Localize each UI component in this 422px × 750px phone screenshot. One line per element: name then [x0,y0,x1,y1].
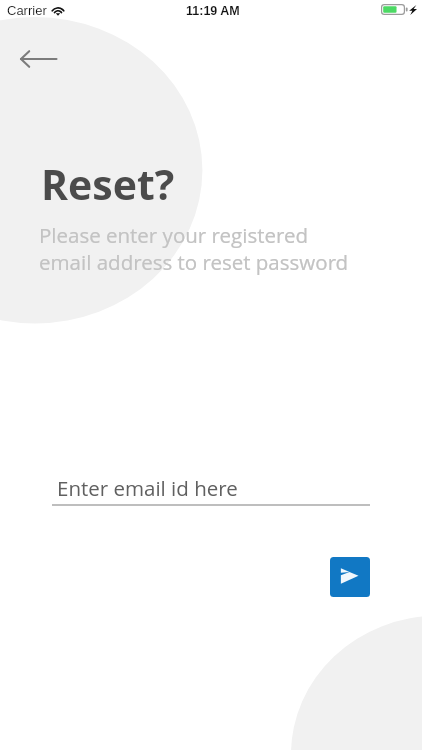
staticText: Please enter your registered email addre… [39,221,349,276]
staticText: 11:19 AM [186,4,240,18]
button[interactable]: Send [330,557,370,597]
staticText: Carrier [7,3,47,18]
staticText: Reset? [41,156,175,212]
button[interactable]: Enter email id here [52,470,370,506]
button[interactable]: Back [4,40,62,78]
staticText: Enter email id here [57,474,238,502]
